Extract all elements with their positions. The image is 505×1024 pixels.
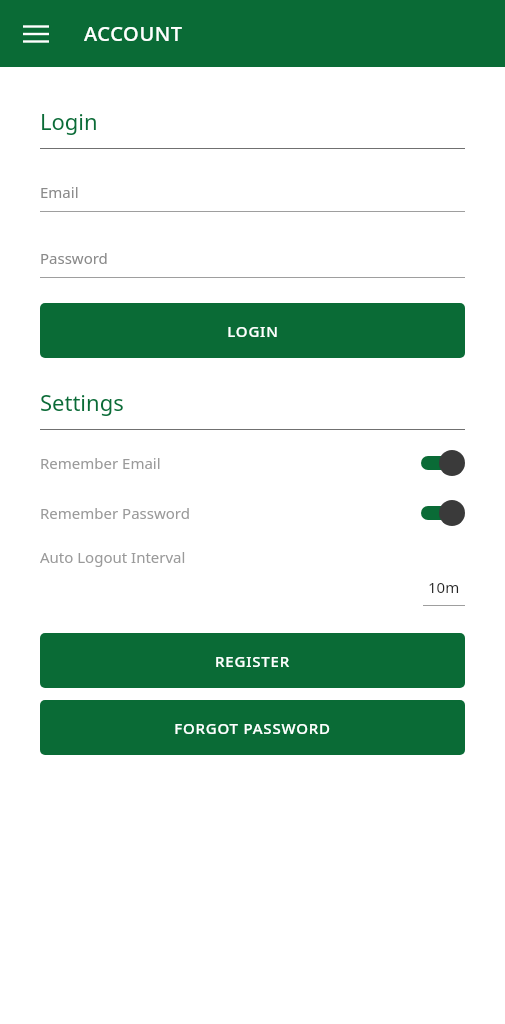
staticText: Email bbox=[40, 182, 79, 202]
other: Toggle bbox=[421, 500, 465, 526]
staticText: Auto Logout Interval bbox=[40, 547, 186, 567]
other: Toggle bbox=[421, 450, 465, 476]
button[interactable]: Remember Email bbox=[40, 444, 465, 482]
staticText: REGISTER bbox=[215, 651, 290, 671]
button[interactable]: Remember Password bbox=[40, 494, 465, 532]
staticText: 10m bbox=[428, 577, 460, 597]
button[interactable]: Email bbox=[40, 182, 465, 212]
staticText: Password bbox=[40, 248, 108, 268]
staticText: ACCOUNT bbox=[84, 20, 183, 47]
button[interactable]: LOGIN bbox=[40, 303, 465, 358]
staticText: Remember Password bbox=[40, 503, 421, 523]
staticText: Remember Email bbox=[40, 453, 421, 473]
staticText: LOGIN bbox=[227, 321, 279, 341]
button[interactable]: FORGOT PASSWORD bbox=[40, 700, 465, 755]
button[interactable]: Open navigation menu bbox=[12, 10, 60, 58]
button[interactable]: Password bbox=[40, 248, 465, 278]
staticText: Settings bbox=[40, 387, 124, 417]
staticText: FORGOT PASSWORD bbox=[174, 718, 331, 738]
button[interactable]: Auto Logout Interval bbox=[40, 547, 465, 606]
button[interactable]: REGISTER bbox=[40, 633, 465, 688]
staticText: Login bbox=[40, 106, 98, 136]
